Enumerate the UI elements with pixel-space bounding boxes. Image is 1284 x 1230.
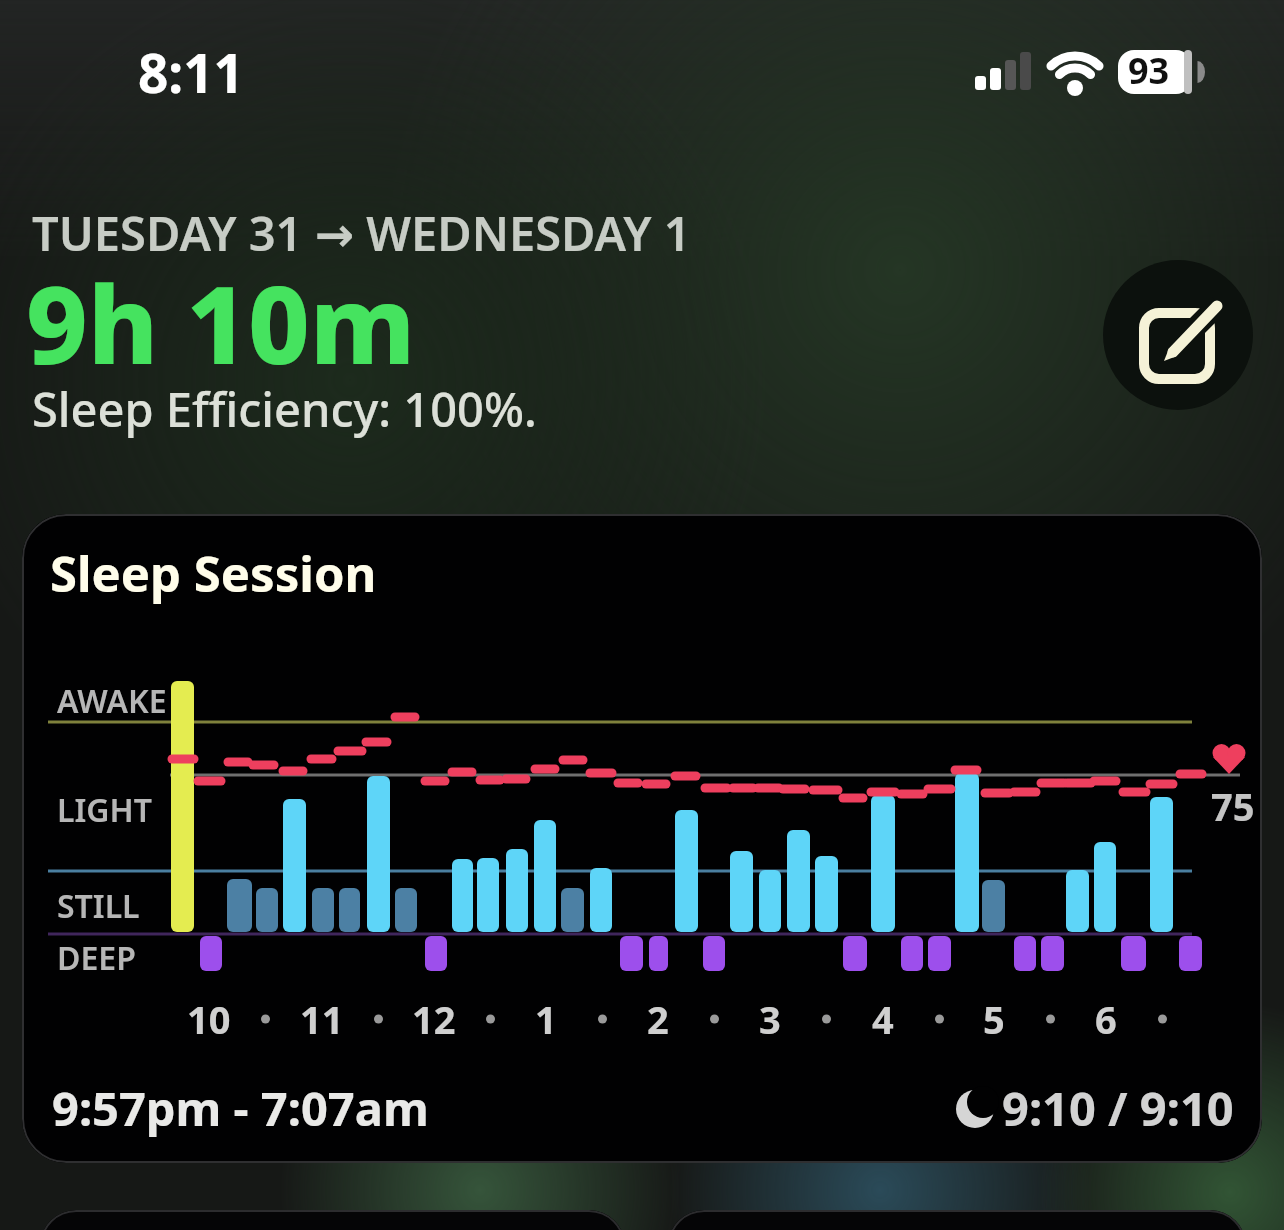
staticText: Sleep Efficiency: 100%. <box>32 377 537 441</box>
staticText: 9:57pm - 7:07am <box>52 1076 429 1140</box>
staticText: 5 <box>983 993 1005 1045</box>
staticText: STILL <box>57 884 140 928</box>
staticText: 12 <box>412 993 456 1045</box>
staticText: 8:11 <box>138 36 244 108</box>
staticText: TUESDAY 31 → WEDNESDAY 1 <box>32 201 691 265</box>
staticText: 9h 10m <box>26 250 416 396</box>
staticText: Sleep Session <box>50 540 377 607</box>
staticText: 3 <box>759 993 781 1045</box>
staticText: 10 <box>187 993 231 1045</box>
staticText: 2 <box>647 993 669 1045</box>
staticText: 93 <box>1128 46 1170 95</box>
button[interactable] <box>668 1210 1246 1230</box>
staticText: AWAKE <box>57 679 167 723</box>
staticText: 1 <box>535 993 557 1045</box>
staticText: 11 <box>300 993 344 1045</box>
staticText: LIGHT <box>57 788 152 832</box>
button[interactable] <box>22 514 1262 1163</box>
staticText: 75 <box>1211 780 1255 832</box>
button[interactable] <box>40 1210 625 1230</box>
button[interactable] <box>1103 260 1253 410</box>
staticText: 9:10 / 9:10 <box>1002 1076 1234 1140</box>
staticText: 4 <box>872 993 894 1045</box>
staticText: 6 <box>1095 993 1117 1045</box>
staticText: DEEP <box>57 936 136 980</box>
